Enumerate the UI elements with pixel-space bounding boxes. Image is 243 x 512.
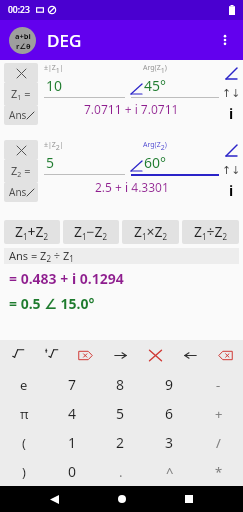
button[interactable]: 1 xyxy=(48,428,96,457)
staticText: Z1×Z2 xyxy=(134,222,168,242)
button[interactable]: 4 xyxy=(48,399,96,428)
staticText: i xyxy=(229,181,234,200)
button[interactable]: 9 xyxy=(145,370,194,399)
button[interactable]: Ans xyxy=(4,182,38,202)
staticText: ^ xyxy=(166,463,174,481)
button[interactable]: Z1−Z2 xyxy=(63,220,119,244)
button[interactable]: Clear all xyxy=(138,340,173,370)
staticText: 1 xyxy=(68,433,77,452)
button[interactable]: - xyxy=(194,370,243,399)
button[interactable]: 5 xyxy=(96,399,145,428)
button[interactable]: Clear Z2 xyxy=(4,140,38,160)
button[interactable]: 6 xyxy=(145,399,194,428)
staticText: 5 xyxy=(116,404,125,423)
staticText: π xyxy=(20,405,29,423)
staticText: Z1÷Z2 xyxy=(194,222,228,242)
button[interactable]: Imaginary xyxy=(221,103,241,123)
button[interactable]: Z2 = xyxy=(4,160,38,182)
button[interactable]: / xyxy=(194,428,243,457)
button[interactable]: π xyxy=(0,399,48,428)
button[interactable]: * xyxy=(194,457,243,486)
staticText: Z1−Z2 xyxy=(74,222,108,242)
staticText: 45° xyxy=(144,76,167,95)
button[interactable]: 3 xyxy=(145,428,194,457)
staticText: 9 xyxy=(165,375,174,394)
staticText: 4 xyxy=(68,404,77,423)
staticText: 3 xyxy=(165,433,174,452)
button[interactable]: Move right xyxy=(103,340,138,370)
button[interactable]: Swap xyxy=(221,160,241,180)
button[interactable]: ) xyxy=(0,457,48,486)
staticText: ±|Z1| xyxy=(44,63,64,75)
staticText: 7.0711 + i 7.0711 xyxy=(84,101,179,117)
staticText: / xyxy=(216,434,221,452)
staticText: Ans = Z2 ÷ Z1 xyxy=(9,248,74,264)
button[interactable]: Swap xyxy=(221,83,241,103)
staticText: ↑↓ xyxy=(222,164,241,177)
button[interactable]: e xyxy=(0,370,48,399)
staticText: ±|Z2| xyxy=(44,140,64,152)
button[interactable]: Ans = Z2 ÷ Z1 xyxy=(4,248,239,264)
button[interactable]: Clear left xyxy=(68,340,103,370)
button[interactable]: ( xyxy=(0,428,48,457)
staticText: DEG xyxy=(47,29,82,52)
staticText: 5 xyxy=(46,153,55,172)
button[interactable]: Recents xyxy=(176,486,202,512)
button[interactable]: Polar form xyxy=(221,140,241,160)
staticText: 2 xyxy=(116,433,125,452)
button[interactable]: Clear Z1 xyxy=(4,63,38,83)
staticText: ( xyxy=(22,434,26,452)
button[interactable]: 7 xyxy=(48,370,96,399)
button[interactable]: Home xyxy=(109,486,135,512)
button[interactable]: Move left xyxy=(173,340,208,370)
staticText: 2.5 + i 4.3301 xyxy=(95,179,169,195)
button[interactable]: ^ xyxy=(145,457,194,486)
staticText: 60° xyxy=(144,153,167,172)
staticText: + xyxy=(215,405,223,423)
button[interactable]: + xyxy=(194,399,243,428)
staticText: . xyxy=(119,463,123,481)
button[interactable]: Ans xyxy=(4,105,38,125)
staticText: 10 xyxy=(46,76,63,95)
staticText: Arg(Z2) xyxy=(143,140,167,152)
staticText: Ans xyxy=(9,185,27,199)
button[interactable]: More options xyxy=(207,22,243,58)
staticText: Arg(Z1) xyxy=(143,63,167,75)
staticText: r∠θ xyxy=(16,41,31,51)
staticText: * xyxy=(215,463,223,481)
button[interactable]: Square root xyxy=(0,340,34,370)
staticText: e xyxy=(20,376,28,394)
staticText: Z2 = xyxy=(11,163,31,179)
staticText: i xyxy=(229,104,234,123)
button[interactable]: 2 xyxy=(96,428,145,457)
button[interactable]: . xyxy=(96,457,145,486)
staticText: 6 xyxy=(165,404,174,423)
button[interactable]: App icon a+bi r angle theta xyxy=(9,27,36,54)
button[interactable]: Imaginary xyxy=(221,180,241,200)
staticText: = 0.5 ∠ 15.0° xyxy=(9,294,95,313)
staticText: ) xyxy=(22,463,26,481)
button[interactable]: Back xyxy=(41,486,67,512)
button[interactable]: 0 xyxy=(48,457,96,486)
staticText: Z1 = xyxy=(11,86,31,102)
button[interactable]: Z1+Z2 xyxy=(4,220,60,244)
staticText: 7 xyxy=(68,375,77,394)
staticText: - xyxy=(216,376,221,394)
button[interactable]: Z1 = xyxy=(4,83,38,105)
staticText: Ans xyxy=(9,108,27,122)
button[interactable]: Cube root xyxy=(34,340,68,370)
button[interactable]: Polar form xyxy=(221,63,241,83)
staticText: 8 xyxy=(116,375,125,394)
button[interactable]: Z1÷Z2 xyxy=(182,220,239,244)
staticText: Z1+Z2 xyxy=(15,222,49,242)
button[interactable]: 8 xyxy=(96,370,145,399)
staticText: 00:23 xyxy=(8,4,30,16)
button[interactable]: Z1×Z2 xyxy=(122,220,179,244)
staticText: = 0.483 + i 0.1294 xyxy=(9,269,124,288)
staticText: 0 xyxy=(68,462,77,481)
staticText: ↑↓ xyxy=(222,87,241,100)
button[interactable]: Backspace xyxy=(208,340,243,370)
staticText: a+bi xyxy=(15,31,31,41)
